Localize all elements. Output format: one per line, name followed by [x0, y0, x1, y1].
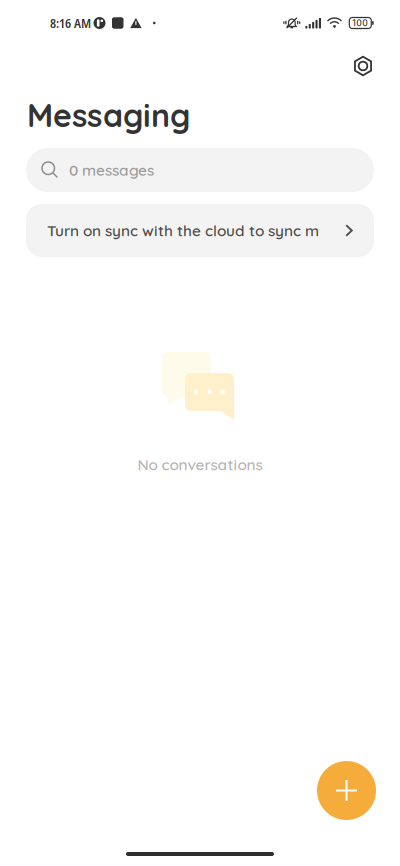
button[interactable]: 0 messages	[26, 148, 374, 192]
staticText: Messaging	[27, 95, 190, 135]
button[interactable]: Settings	[341, 44, 385, 88]
staticText: No conversations	[137, 455, 262, 474]
staticText: 100	[352, 18, 368, 28]
staticText: 8:16 AM	[50, 14, 91, 32]
staticText: Turn on sync with the cloud to sync m	[47, 221, 319, 240]
staticText: 0 messages	[69, 160, 154, 180]
button[interactable]: Turn on sync with the cloud to sync m	[26, 204, 374, 257]
button[interactable]: New conversation	[317, 761, 376, 820]
